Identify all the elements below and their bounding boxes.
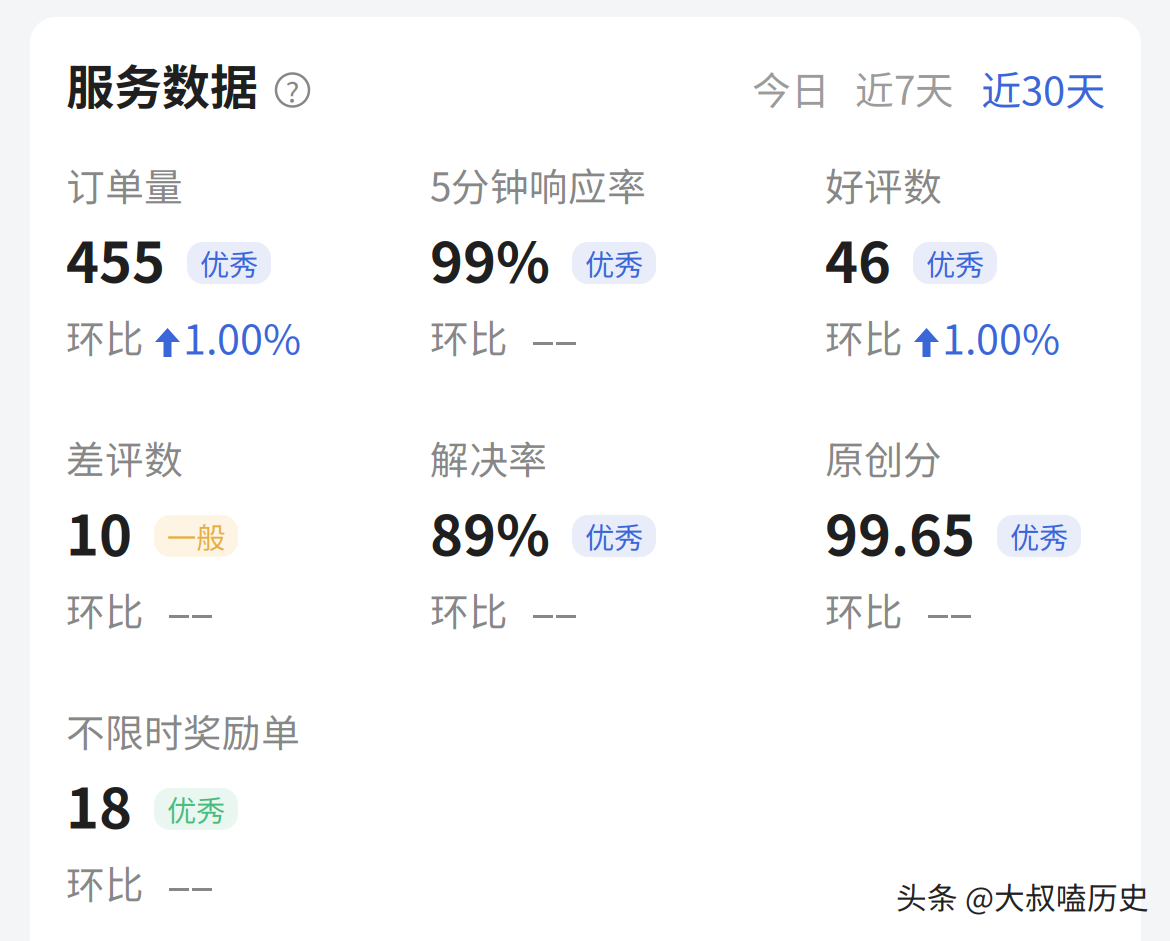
staticText: 5分钟响应率 <box>430 156 646 212</box>
staticText: 好评数 <box>825 156 942 212</box>
staticText: 优秀 <box>200 242 258 284</box>
staticText: 455 <box>66 217 165 299</box>
staticText: 环比 <box>825 581 903 637</box>
staticText: 优秀 <box>1010 515 1068 557</box>
staticText: 不限时奖励单 <box>66 702 300 758</box>
staticText: 46 <box>825 217 891 299</box>
staticText: 环比 <box>66 308 144 364</box>
staticText: 头条 @大叔嗑历史 <box>896 874 1149 918</box>
staticText: 环比 <box>825 308 903 364</box>
button[interactable]: 说明 <box>276 67 309 100</box>
button[interactable]: 今日 <box>752 56 830 112</box>
staticText: 优秀 <box>585 242 643 284</box>
staticText: 原创分 <box>825 429 942 485</box>
staticText: 订单量 <box>66 156 183 212</box>
staticText: 差评数 <box>66 429 183 485</box>
staticText: 1.00% <box>942 307 1060 366</box>
staticText: 优秀 <box>585 515 643 557</box>
staticText: 服务数据 <box>66 49 258 119</box>
staticText: 1.00% <box>183 307 301 366</box>
staticText: 一般 <box>167 515 225 557</box>
staticText: 环比 <box>66 581 144 637</box>
staticText: 18 <box>66 763 132 845</box>
staticText: 优秀 <box>926 242 984 284</box>
staticText: 环比 <box>430 308 508 364</box>
staticText: 解决率 <box>430 429 547 485</box>
button[interactable]: 近7天 <box>855 56 954 112</box>
staticText: 近30天 <box>981 59 1105 117</box>
staticText: 99.65 <box>825 490 975 572</box>
staticText: 优秀 <box>167 788 225 830</box>
staticText: 89% <box>430 490 550 572</box>
staticText: 近7天 <box>855 60 954 116</box>
staticText: 环比 <box>66 854 144 910</box>
staticText: 99% <box>430 217 550 299</box>
staticText: 环比 <box>430 581 508 637</box>
staticText: 10 <box>66 490 132 572</box>
staticText: 今日 <box>752 60 830 116</box>
button[interactable]: 近30天 <box>981 55 1105 113</box>
staticText: ? <box>285 69 299 111</box>
